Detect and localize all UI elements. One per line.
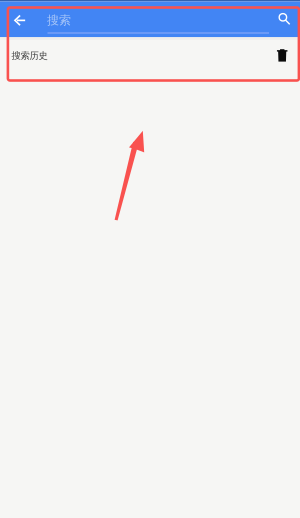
button[interactable]: Back [6, 7, 32, 33]
staticText: 搜索历史 [11, 50, 47, 61]
button[interactable]: Clear search history [271, 44, 293, 66]
button[interactable]: 搜索 [47, 7, 269, 33]
staticText: 搜索 [47, 13, 71, 28]
button[interactable]: Search [272, 7, 296, 31]
